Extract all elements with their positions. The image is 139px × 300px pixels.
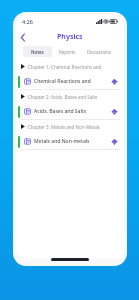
button[interactable]: Back [16, 30, 30, 44]
button[interactable]: Download [109, 106, 120, 117]
button[interactable]: Discussions [82, 46, 117, 57]
staticText: Metals and Non-metals [34, 138, 109, 145]
button[interactable]: Notes [23, 46, 52, 57]
button[interactable]: Download [109, 136, 120, 147]
staticText: Chapter 1: Chemical Reactions and Equati… [28, 64, 120, 70]
staticText: Discussions [87, 49, 112, 55]
button[interactable]: Acids, Bases and Salts [18, 104, 122, 119]
staticText: Acids, Bases and Salts [34, 108, 109, 115]
staticText: Notes [31, 49, 44, 55]
button[interactable]: Chapter 2: Acids, Bases and Salts [16, 90, 124, 103]
button[interactable]: Chemical Reactions and Equations [18, 74, 122, 89]
button[interactable]: Reports [52, 46, 82, 57]
button[interactable]: Chapter 3: Metals and Non-Metals [16, 120, 124, 133]
staticText: Reports [59, 49, 76, 55]
staticText: Physics [57, 32, 83, 42]
staticText: Chapter 3: Metals and Non-Metals [28, 124, 101, 130]
staticText: Chapter 2: Acids, Bases and Salts [28, 94, 98, 100]
staticText: 4:26 [22, 18, 33, 25]
staticText: Chemical Reactions and Equations [34, 78, 109, 85]
button[interactable]: Chapter 1: Chemical Reactions and Equati… [16, 60, 124, 73]
button[interactable]: Metals and Non-metals [18, 134, 122, 149]
button[interactable]: Download [109, 76, 120, 87]
